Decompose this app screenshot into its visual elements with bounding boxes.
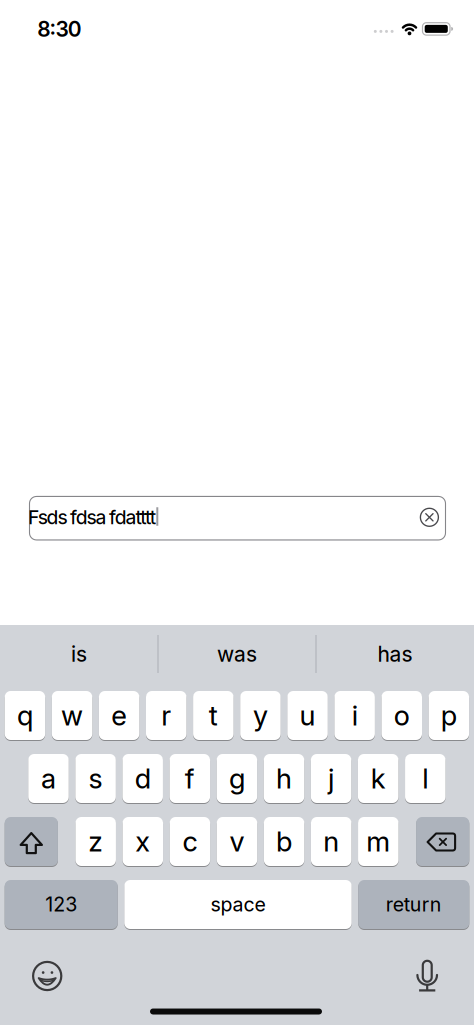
staticText: l	[422, 762, 428, 795]
button[interactable]: y	[240, 690, 281, 740]
staticText: c	[182, 825, 197, 858]
button[interactable]: Numbers	[5, 879, 118, 929]
staticText: a	[41, 762, 56, 795]
button[interactable]: w	[52, 690, 92, 740]
button[interactable]: d	[122, 753, 163, 803]
staticText: 123	[45, 893, 77, 916]
staticText: is	[71, 642, 87, 666]
staticText: was	[217, 642, 257, 666]
button[interactable]: x	[123, 816, 163, 866]
staticText: i	[352, 699, 358, 732]
staticText: r	[161, 699, 171, 732]
button[interactable]: r	[146, 690, 186, 740]
button[interactable]: o	[381, 690, 422, 740]
button[interactable]: v	[217, 816, 257, 866]
button[interactable]: space	[124, 879, 352, 929]
staticText: y	[253, 699, 268, 732]
button[interactable]: m	[358, 816, 399, 866]
staticText: p	[441, 699, 457, 732]
button[interactable]: u	[287, 690, 328, 740]
button[interactable]: was	[162, 630, 312, 678]
staticText: o	[394, 699, 410, 732]
button[interactable]: s	[75, 753, 116, 803]
button[interactable]: t	[193, 690, 234, 740]
button[interactable]: a	[28, 753, 69, 803]
staticText: h	[276, 762, 292, 795]
staticText: e	[111, 699, 127, 732]
staticText: v	[229, 825, 244, 858]
staticText: k	[371, 762, 386, 795]
staticText: space	[210, 893, 265, 916]
button[interactable]: q	[5, 690, 45, 740]
button[interactable]: Emoji	[25, 954, 69, 998]
staticText: j	[328, 762, 334, 795]
button[interactable]: return	[358, 879, 469, 929]
button[interactable]: k	[358, 753, 398, 803]
button[interactable]: c	[170, 816, 210, 866]
button[interactable]: is	[4, 630, 154, 678]
button[interactable]: Delete	[416, 816, 469, 866]
button[interactable]: j	[311, 753, 351, 803]
button[interactable]: Shift	[5, 816, 58, 866]
staticText: x	[135, 825, 150, 858]
button[interactable]: Dictate	[405, 954, 449, 998]
button[interactable]: e	[99, 690, 139, 740]
staticText: t	[209, 699, 218, 732]
button[interactable]: g	[217, 753, 257, 803]
button[interactable]: i	[334, 690, 375, 740]
staticText: f	[185, 762, 195, 795]
button[interactable]: n	[311, 816, 351, 866]
button[interactable]: z	[75, 816, 116, 866]
staticText: return	[386, 893, 442, 916]
staticText: b	[276, 825, 292, 858]
staticText: q	[17, 699, 33, 732]
staticText: n	[323, 825, 339, 858]
button[interactable]: p	[429, 690, 469, 740]
staticText: Fsds fdsa fdatttt	[28, 506, 156, 529]
staticText: 8:30	[37, 17, 82, 41]
staticText: m	[366, 825, 390, 858]
button[interactable]: Clear text	[414, 502, 444, 532]
staticText: z	[88, 825, 103, 858]
staticText: u	[300, 699, 316, 732]
button[interactable]: l	[405, 753, 446, 803]
staticText: d	[135, 762, 151, 795]
staticText: g	[229, 762, 245, 795]
button[interactable]: has	[320, 630, 470, 678]
staticText: has	[377, 642, 412, 666]
button[interactable]: b	[264, 816, 304, 866]
staticText: s	[89, 762, 103, 795]
staticText: w	[61, 699, 83, 732]
button[interactable]: h	[264, 753, 304, 803]
button[interactable]: f	[170, 753, 210, 803]
